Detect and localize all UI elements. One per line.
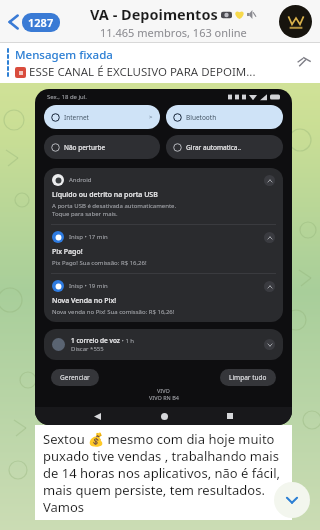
staticText: ESSE CANAL É EXCLUSIVO PARA DEPOIM... xyxy=(29,64,256,80)
button[interactable]: Back xyxy=(4,6,63,38)
staticText: Discar *555 xyxy=(71,345,104,353)
button[interactable]: Sex., 18 de jul. xyxy=(35,89,292,425)
button[interactable]: Mensagem fixada xyxy=(0,43,320,83)
button[interactable]: Não perturbe xyxy=(51,135,153,159)
button[interactable]: Internet xyxy=(51,105,153,129)
staticText: A porta USB é desativada automaticamente… xyxy=(52,202,177,218)
staticText: Inisp xyxy=(69,282,83,290)
button[interactable]: Inisp xyxy=(44,225,283,273)
staticText: VIVO xyxy=(157,387,170,394)
staticText: Internet xyxy=(64,113,89,122)
button[interactable]: Bluetooth xyxy=(173,105,276,129)
staticText: Nova venda no Pix! Sua comissão: R$ 16,2… xyxy=(52,308,175,316)
staticText: 1 correio de voz xyxy=(71,336,120,345)
staticText: • 19 min xyxy=(83,282,108,290)
staticText: Android xyxy=(69,176,92,184)
button[interactable]: Collapse xyxy=(264,281,275,292)
button[interactable]: Android xyxy=(44,168,283,224)
staticText: Líquido ou detrito na porta USB xyxy=(52,190,158,200)
staticText: • 17 min xyxy=(83,233,108,241)
staticText: Pix Pago! Sua comissão: R$ 16,26! xyxy=(52,259,147,267)
button[interactable]: Girar automatica.. xyxy=(173,135,276,159)
staticText: • 1 h xyxy=(120,337,135,345)
button[interactable]: Limpar tudo xyxy=(220,369,276,386)
staticText: Sex., 18 de jul. xyxy=(47,93,87,101)
staticText: 11.465 membros, 163 online xyxy=(100,25,247,40)
staticText: Gerenciar xyxy=(60,373,90,382)
staticText: Girar automatica.. xyxy=(186,143,241,152)
button[interactable]: Collapse xyxy=(264,232,275,243)
button[interactable]: Sextou 💰 mesmo com dia hoje muito puxado… xyxy=(35,425,292,520)
staticText: Pix Pago! xyxy=(52,247,83,257)
button[interactable]: Chat avatar xyxy=(279,5,312,38)
staticText: Não perturbe xyxy=(64,143,106,152)
staticText: Inisp xyxy=(69,233,83,241)
button[interactable]: Collapse xyxy=(264,175,275,186)
button[interactable]: Expand xyxy=(264,339,275,350)
button[interactable]: Inisp xyxy=(44,274,283,322)
staticText: Nova Venda no Pix! xyxy=(52,296,117,306)
staticText: VIVO RN B4 xyxy=(149,394,179,401)
staticText: Sextou 💰 mesmo com dia hoje muito puxado… xyxy=(43,430,286,516)
staticText: VA - Depoimentos xyxy=(90,4,218,24)
button[interactable]: Scroll to bottom xyxy=(274,482,310,518)
button[interactable]: Gerenciar xyxy=(51,369,99,386)
staticText: Mensagem fixada xyxy=(15,47,113,63)
button[interactable]: 1 correio de voz xyxy=(52,336,275,353)
staticText: 1287 xyxy=(28,15,54,30)
staticText: > xyxy=(149,113,153,121)
staticText: Bluetooth xyxy=(186,113,217,122)
staticText: Limpar tudo xyxy=(229,373,267,382)
